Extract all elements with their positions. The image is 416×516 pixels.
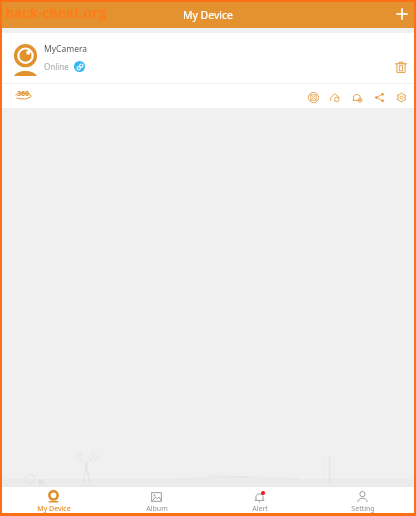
staticText: hack-cheat.org <box>5 4 107 22</box>
button[interactable]: MyCamera <box>2 33 414 83</box>
button[interactable]: Add device <box>388 2 414 28</box>
button[interactable]: Album <box>105 486 208 513</box>
staticText: Setting <box>351 504 375 513</box>
button[interactable]: Live view <box>302 85 324 107</box>
staticText: Online <box>44 61 69 72</box>
staticText: MyCamera <box>44 43 88 55</box>
staticText: Alert <box>252 504 268 513</box>
button[interactable]: My Device <box>2 486 105 513</box>
button[interactable]: Share <box>368 85 390 107</box>
button[interactable]: Setting <box>311 486 414 513</box>
button[interactable]: Delete <box>387 53 415 81</box>
staticText: My Device <box>183 8 233 22</box>
staticText: My Device <box>37 504 71 513</box>
button[interactable]: Alerts <box>346 85 368 107</box>
staticText: 360 <box>17 89 30 99</box>
button[interactable]: Cloud <box>324 85 346 107</box>
staticText: Album <box>146 504 168 513</box>
button[interactable]: Settings <box>390 85 412 107</box>
button[interactable]: Alert <box>208 486 311 513</box>
